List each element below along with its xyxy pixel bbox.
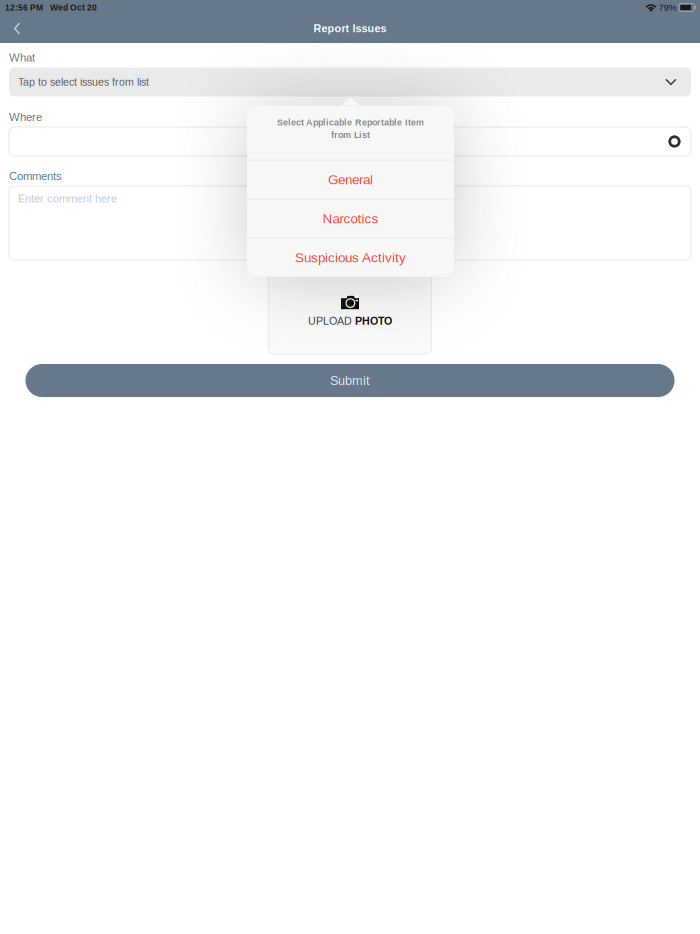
staticText: Comments [9,170,62,182]
staticText: UPLOAD [308,315,355,327]
staticText: What [9,51,35,64]
staticText: from List [331,130,370,140]
button[interactable]: Use current location [663,130,686,153]
staticText: 79% [658,2,676,13]
staticText: Tap to select issues from list [18,76,149,88]
staticText: General [328,172,373,187]
button[interactable]: Suspicious Activity [247,238,454,277]
staticText: Submit [330,373,370,388]
staticText: Select Applicable Reportable Item [277,117,424,127]
button[interactable]: Tap to select issues from list [9,67,691,96]
button[interactable]: Narcotics [247,199,454,238]
staticText: Enter comment here [18,192,117,205]
button[interactable]: Back [0,15,32,41]
button[interactable]: Submit [25,364,674,397]
staticText: PHOTO [355,315,392,327]
staticText: 12:56 PM [5,3,43,12]
staticText: Report Issues [313,22,386,35]
button[interactable]: UPLOAD [268,267,431,354]
staticText: Suspicious Activity [295,250,406,265]
staticText: Where [9,111,42,123]
button[interactable]: General [247,160,454,199]
staticText: Wed Oct 20 [50,3,97,12]
staticText: Narcotics [322,211,378,226]
